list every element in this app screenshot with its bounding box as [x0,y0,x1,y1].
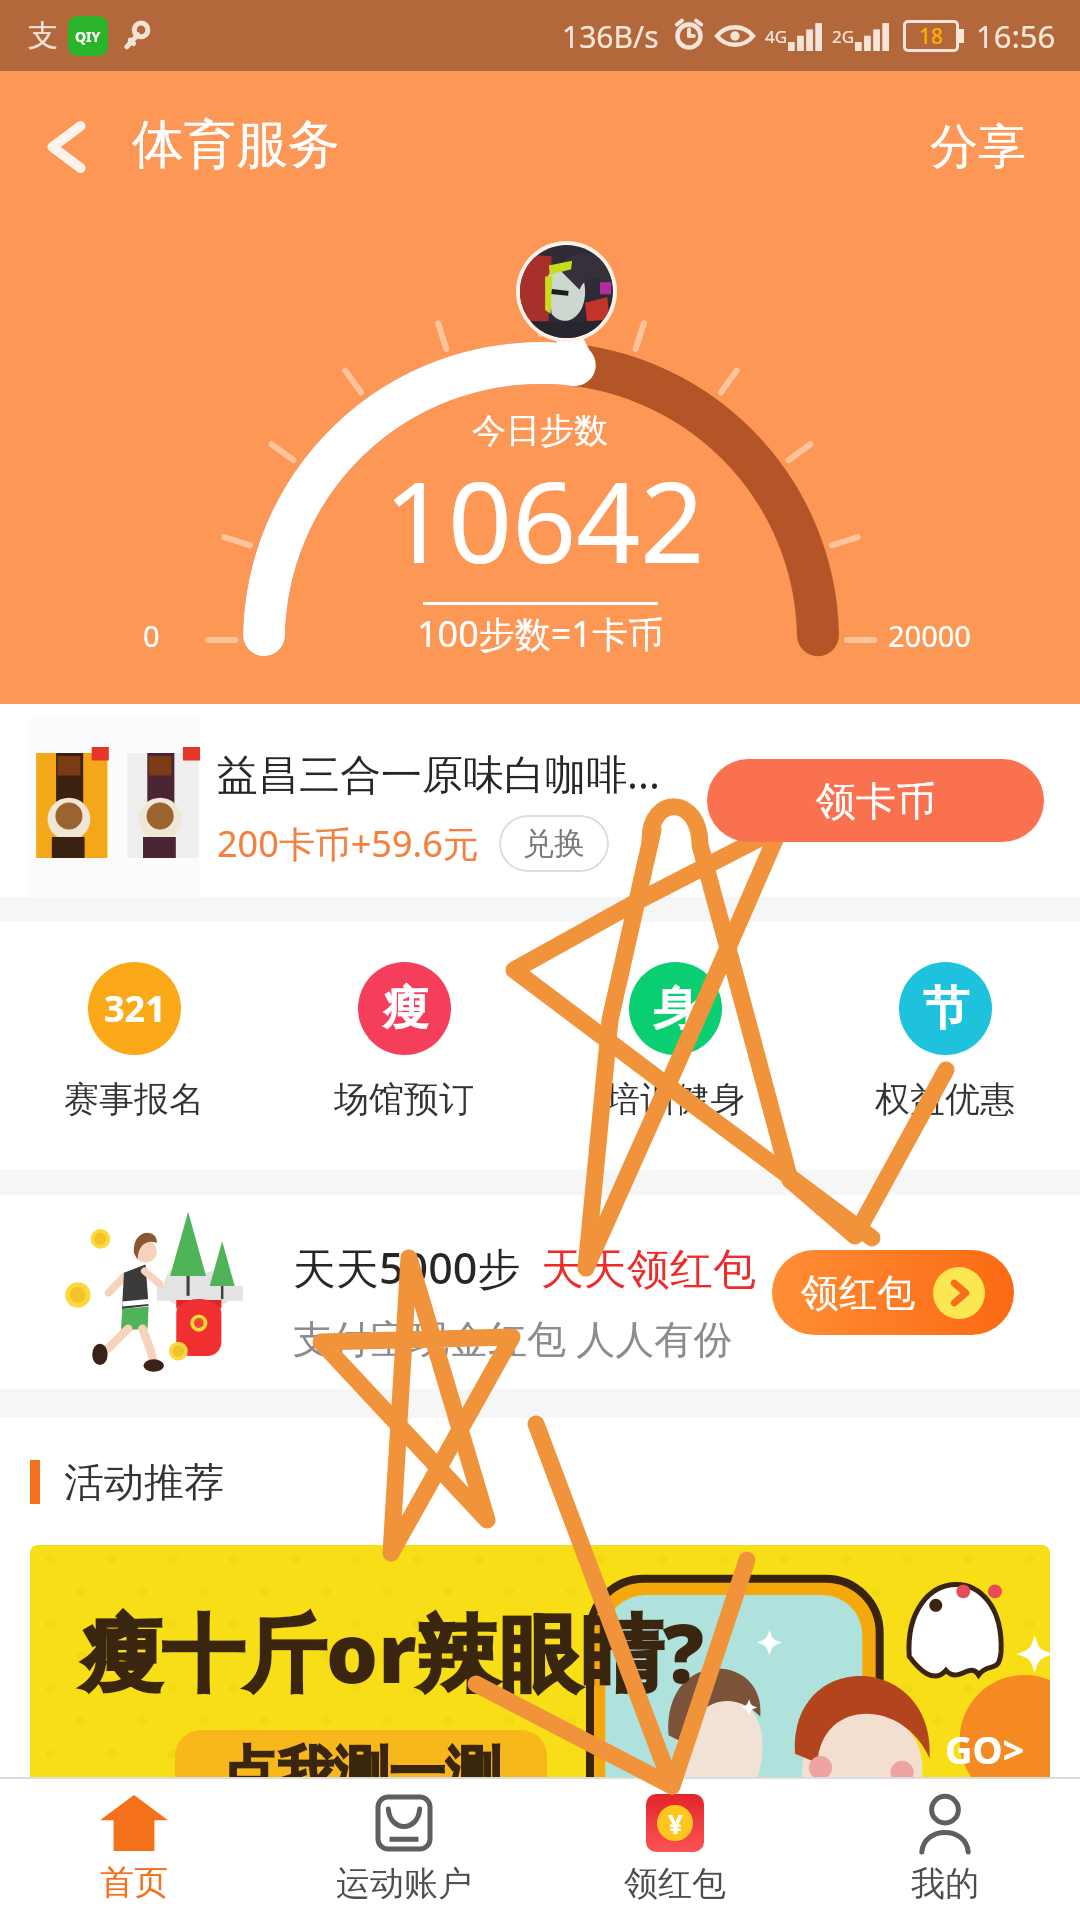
staticText: 分享 [930,117,1026,177]
button[interactable]: 领卡币 [707,759,1044,842]
staticText: 0 [143,616,160,655]
staticText: 赛事报名 [64,1077,204,1121]
staticText: 领红包 [624,1862,726,1905]
button[interactable]: 兑换 [499,815,609,872]
staticText: ¥ [668,1806,683,1841]
staticText: 活动推荐 [64,1457,224,1507]
staticText: 支 [28,17,58,55]
staticText: 天天5000步 [293,1238,521,1297]
staticText: 2G [832,25,855,48]
button[interactable]: 运动账户 [269,1779,539,1920]
button[interactable]: 瘦 [304,962,504,1121]
button[interactable]: 节 [845,962,1045,1121]
button[interactable]: 分享 [890,93,1080,201]
button[interactable]: 321 [34,962,234,1121]
staticText: 瘦 [382,980,428,1038]
staticText: 瘦十斤or辣眼睛? [80,1595,705,1707]
staticText: 4G [765,25,788,48]
staticText: 10642 [384,443,705,596]
staticText: 16:56 [976,15,1056,57]
button[interactable]: 瘦十斤or辣眼睛? [30,1545,1050,1777]
staticText: 场馆预订 [334,1077,474,1121]
staticText: 天天领红包 [541,1243,756,1297]
staticText: 益昌三合一原味白咖啡... [217,745,660,801]
button[interactable]: 天天5000步 [0,1195,1080,1389]
button[interactable]: 我的 [810,1779,1080,1920]
staticText: 136B/s [562,16,659,57]
staticText: 领卡币 [816,776,936,826]
staticText: 20000 [888,616,971,655]
button[interactable]: Back [0,92,132,202]
staticText: 培训健身 [605,1077,745,1121]
staticText: QIY [75,27,101,46]
staticText: 支付宝现金红包 人人有份 [293,1311,733,1364]
staticText: 321 [104,984,166,1033]
staticText: 100步数=1卡币 [417,609,664,658]
button[interactable]: 益昌三合一原味白咖啡... [0,704,1080,897]
staticText: 200卡币+59.6元 [217,819,479,868]
staticText: 权益优惠 [875,1077,1015,1121]
button[interactable]: 领红包 [772,1250,1014,1335]
staticText: 体育服务 [132,112,340,178]
button[interactable]: ¥ [540,1779,810,1920]
staticText: 今日步数 [472,409,608,452]
button[interactable]: 身 [575,962,775,1121]
staticText: 首页 [100,1861,168,1904]
staticText: 领红包 [801,1269,915,1317]
staticText: 我的 [911,1862,979,1905]
staticText: 18 [919,22,944,51]
staticText: GO> [945,1723,1025,1775]
staticText: 兑换 [523,824,585,863]
staticText: 节 [923,980,969,1038]
staticText: 身 [653,980,699,1038]
staticText: 点我测一测 [221,1738,501,1777]
staticText: 运动账户 [336,1862,472,1905]
button[interactable]: 首页 [0,1779,269,1920]
